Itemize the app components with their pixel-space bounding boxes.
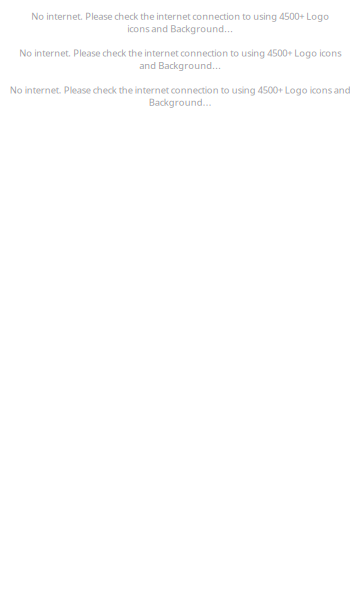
staticText: No internet. Please check the internet c… — [19, 47, 341, 72]
staticText: No internet. Please check the internet c… — [9, 84, 350, 108]
staticText: No internet. Please check the internet c… — [31, 10, 329, 35]
